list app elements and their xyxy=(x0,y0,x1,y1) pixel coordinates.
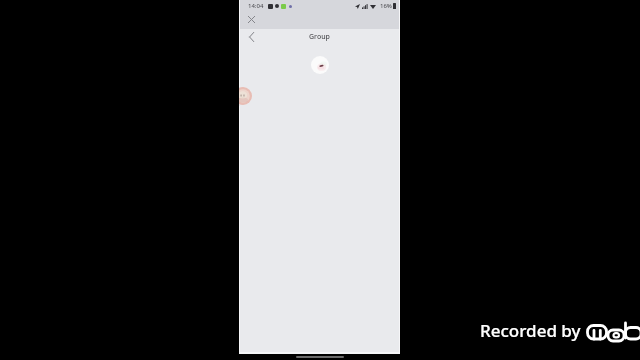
button[interactable]: Back xyxy=(243,29,260,45)
button[interactable]: Group photo xyxy=(311,56,329,74)
button[interactable]: Recorded by Mobizen xyxy=(480,319,581,342)
staticText: 16% xyxy=(380,2,392,10)
staticText: Group xyxy=(309,32,330,42)
button[interactable]: Member xyxy=(239,87,252,105)
staticText: 14:04 xyxy=(248,2,264,10)
button[interactable]: Close xyxy=(243,11,260,28)
staticText: Recorded by xyxy=(480,319,581,342)
